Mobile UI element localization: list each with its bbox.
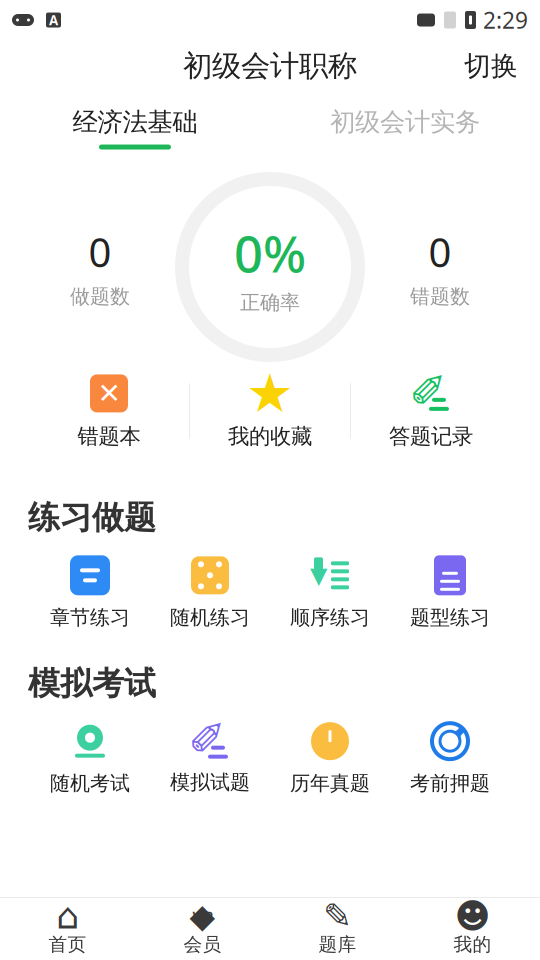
staticText: ✎: [323, 896, 352, 936]
staticText: 我的: [453, 933, 491, 956]
staticText: 会员: [183, 933, 221, 956]
button[interactable]: ◆: [135, 898, 270, 960]
button[interactable]: ⌂: [0, 898, 135, 960]
button[interactable]: ✐: [351, 366, 511, 456]
staticText: ☻: [454, 896, 490, 936]
staticText: 顺序练习: [290, 605, 370, 630]
staticText: 切换: [464, 50, 518, 82]
staticText: ⌂: [56, 896, 79, 936]
staticText: ✦: [451, 721, 468, 743]
button[interactable]: ✎: [270, 898, 405, 960]
staticText: 错题数: [410, 284, 470, 309]
button[interactable]: ★: [190, 366, 350, 456]
staticText: ◆: [189, 897, 215, 935]
staticText: 我的收藏: [228, 423, 312, 450]
button[interactable]: 题型练习: [390, 553, 510, 630]
staticText: 考前押题: [410, 771, 490, 796]
staticText: ✕: [97, 377, 120, 409]
button[interactable]: ✕: [29, 366, 189, 456]
staticText: 错题本: [77, 423, 140, 450]
staticText: ★: [246, 363, 294, 424]
staticText: ✐: [188, 713, 226, 765]
staticText: 0: [428, 225, 451, 278]
staticText: 历年真题: [290, 771, 370, 796]
staticText: 随机考试: [50, 771, 130, 796]
staticText: 做题数: [70, 284, 130, 309]
button[interactable]: 历年真题: [270, 719, 390, 796]
button[interactable]: ▼: [270, 553, 390, 630]
staticText: 模拟试题: [170, 770, 250, 795]
button[interactable]: ✐: [150, 720, 270, 795]
staticText: 初级会计职称: [183, 48, 357, 84]
staticText: 初级会计实务: [330, 106, 480, 137]
staticText: 题库: [318, 933, 356, 956]
staticText: 0%: [234, 219, 306, 286]
staticText: ▼: [310, 562, 327, 588]
button[interactable]: ✦: [390, 719, 510, 796]
button[interactable]: 经济法基础: [20, 102, 250, 154]
staticText: 正确率: [240, 290, 300, 315]
button[interactable]: 随机练习: [150, 553, 270, 630]
button[interactable]: 章节练习: [30, 553, 150, 630]
staticText: 练习做题: [28, 498, 156, 537]
staticText: 题型练习: [410, 605, 490, 630]
staticText: 模拟考试: [28, 664, 156, 703]
button[interactable]: 切换: [464, 42, 540, 90]
staticText: VIP: [192, 908, 212, 924]
button[interactable]: ☻: [405, 898, 540, 960]
staticText: A: [49, 11, 58, 29]
staticText: 2:29: [483, 5, 528, 35]
button[interactable]: 初级会计实务: [290, 102, 520, 154]
staticText: 0: [88, 225, 111, 278]
staticText: 经济法基础: [72, 106, 197, 137]
staticText: ✐: [409, 366, 447, 417]
staticText: 章节练习: [50, 605, 130, 630]
staticText: 答题记录: [389, 423, 473, 450]
staticText: 随机练习: [170, 605, 250, 630]
staticText: 首页: [48, 933, 86, 956]
button[interactable]: 随机考试: [30, 719, 150, 796]
